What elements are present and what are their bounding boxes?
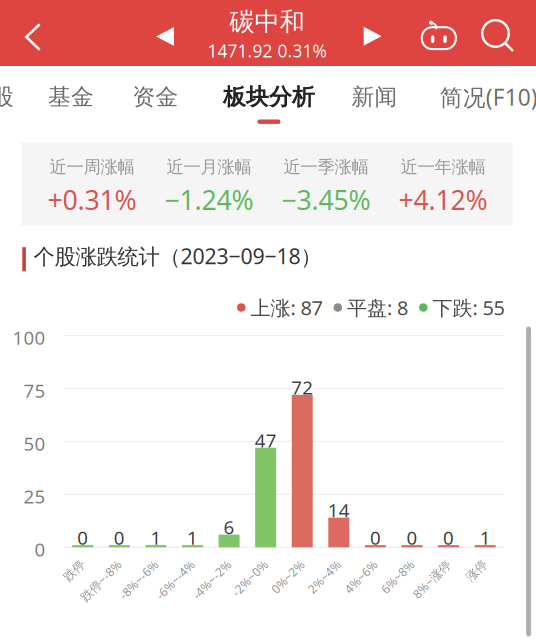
staticText: -6%~-4% [152,575,201,591]
staticText: 新闻 [351,83,397,111]
staticText: 近一季涨幅 [283,156,368,178]
staticText: 近一周涨幅 [49,156,134,178]
staticText: 板块分析 [223,83,315,111]
staticText: 0 [406,525,417,550]
staticText: 个股涨跌统计（2023−09−18） [33,242,321,270]
staticText: 下跌: 55 [433,294,505,321]
staticText: 涨停 [470,576,494,591]
staticText: 近一月涨幅 [166,156,251,178]
staticText: 100 [12,325,45,350]
button[interactable]: 个股 [0,66,51,132]
staticText: 碳中和 [229,6,304,37]
staticText: +4.12% [398,182,487,217]
staticText: 0 [77,525,88,550]
staticText: 资金 [132,83,178,111]
staticText: 跌停 [67,576,91,591]
staticText: -8%~-6% [116,575,165,591]
staticText: 1 [150,525,161,550]
staticText: 0%~2% [270,575,311,591]
staticText: 4%~6% [343,575,384,591]
staticText: 8%~涨停 [409,575,457,591]
button[interactable]: Next sector [352,11,394,61]
staticText: +0.31% [47,182,136,217]
button[interactable]: 板块分析 [209,66,329,132]
staticText: 0 [34,537,45,562]
staticText: 47 [255,428,277,453]
staticText: 0 [443,525,454,550]
staticText: 6%~8% [380,575,421,591]
staticText: 14 [328,498,350,522]
staticText: 2%~4% [307,575,348,591]
button[interactable]: Previous sector [144,11,186,61]
staticText: 0 [114,525,125,550]
staticText: 跌停~-8% [76,575,128,591]
button[interactable]: 资金 [95,66,215,132]
staticText: 近一年涨幅 [400,156,485,178]
staticText: -4%~-2% [189,575,238,591]
staticText: 1 [187,525,198,550]
button[interactable]: 新闻 [314,66,434,132]
staticText: 0 [370,525,381,550]
staticText: 平盘: 8 [347,294,408,321]
button[interactable]: AI assistant [413,10,465,62]
staticText: −3.45% [281,182,370,217]
staticText: 75 [23,378,45,403]
staticText: 25 [23,484,45,509]
button[interactable]: 碳中和 [172,6,362,62]
staticText: −1.24% [164,182,253,217]
button[interactable]: 基金 [11,66,131,132]
staticText: 1 [480,525,491,550]
button[interactable]: Back [7,7,59,67]
staticText: 个股 [0,83,14,111]
staticText: -2%~0% [229,575,274,591]
button[interactable]: Search [472,10,524,62]
staticText: 上涨: 87 [251,294,323,321]
staticText: 简况(F10) [440,82,536,112]
staticText: 基金 [48,83,94,111]
staticText: 1471.92 0.31% [207,39,326,62]
button[interactable]: 简况(F10) [429,66,536,132]
staticText: 50 [23,431,45,456]
staticText: 72 [291,375,313,400]
staticText: 6 [224,515,235,539]
